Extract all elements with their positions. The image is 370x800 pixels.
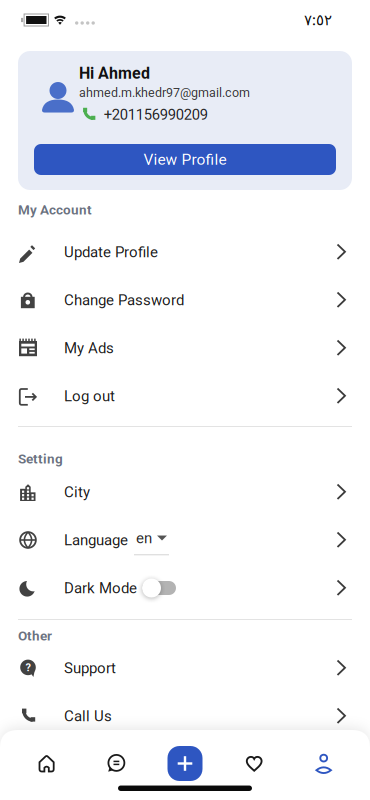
button[interactable]: City [0, 468, 370, 516]
button[interactable]: Favorites [220, 751, 289, 775]
button[interactable]: Log out [0, 372, 370, 420]
button[interactable]: Change Password [0, 276, 370, 324]
staticText: ahmed.m.khedr97@gmail.com [79, 85, 250, 100]
staticText: +201156990209 [104, 106, 208, 123]
staticText: Log out [64, 387, 115, 405]
button[interactable]: Update Profile [0, 228, 370, 276]
staticText: City [64, 483, 90, 501]
staticText: Change Password [64, 291, 184, 309]
staticText: Hi Ahmed [79, 64, 150, 83]
staticText: Setting [18, 451, 63, 467]
staticText: Support [64, 659, 116, 677]
button[interactable]: Chats [81, 751, 150, 775]
button[interactable]: Add [150, 746, 220, 781]
button[interactable]: My Ads [0, 324, 370, 372]
staticText: Update Profile [64, 243, 158, 261]
button[interactable]: Call Us [0, 692, 370, 740]
staticText: Dark Mode [64, 579, 137, 597]
staticText: Language [64, 531, 128, 549]
staticText: View Profile [143, 150, 226, 169]
staticText: en [136, 529, 152, 547]
button[interactable]: Dark Mode [0, 564, 370, 612]
button[interactable]: View Profile [34, 144, 336, 175]
staticText: My Account [18, 202, 92, 218]
staticText: Other [18, 628, 52, 644]
button[interactable]: Profile [289, 751, 358, 775]
staticText: ٧:٥٢ [304, 11, 332, 29]
staticText: My Ads [64, 339, 114, 357]
button[interactable]: ? [0, 644, 370, 692]
button[interactable]: Language [0, 516, 370, 564]
staticText: ? [25, 661, 30, 674]
button[interactable]: Home [12, 751, 81, 775]
staticText: Call Us [64, 707, 112, 725]
